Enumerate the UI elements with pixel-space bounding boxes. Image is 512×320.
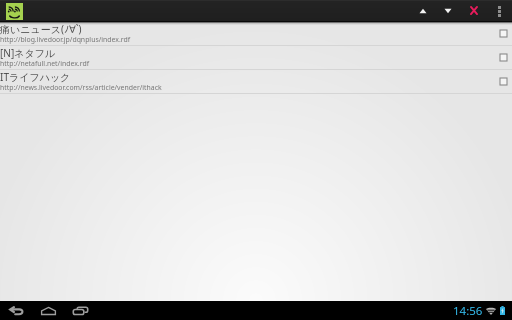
- staticText: ITライフハック: [0, 70, 71, 84]
- button[interactable]: ITライフハック: [0, 70, 512, 94]
- button[interactable]: Home: [32, 301, 64, 320]
- button[interactable]: Next: [435, 0, 460, 21]
- staticText: http://netafull.net/index.rdf: [0, 59, 89, 68]
- staticText: 痛いニュース(ﾉ∀`): [0, 22, 82, 36]
- button[interactable]: [N]ネタフル: [0, 46, 512, 70]
- staticText: http://news.livedoor.com/rss/article/ven…: [0, 83, 162, 92]
- button[interactable]: 痛いニュース(ﾉ∀`): [0, 22, 512, 46]
- button[interactable]: Select feed: [494, 70, 512, 93]
- button[interactable]: Select feed: [494, 46, 512, 69]
- button[interactable]: Close: [461, 0, 486, 21]
- staticText: 14:56: [453, 303, 483, 319]
- button[interactable]: Select feed: [494, 22, 512, 45]
- staticText: [N]ネタフル: [0, 46, 56, 60]
- button[interactable]: More options: [487, 0, 512, 21]
- button[interactable]: Recents: [64, 301, 97, 320]
- button[interactable]: Previous: [410, 0, 435, 21]
- button[interactable]: Back: [0, 301, 32, 320]
- button[interactable]: App icon: [6, 3, 23, 20]
- staticText: http://blog.livedoor.jp/dqnplus/index.rd…: [0, 35, 131, 44]
